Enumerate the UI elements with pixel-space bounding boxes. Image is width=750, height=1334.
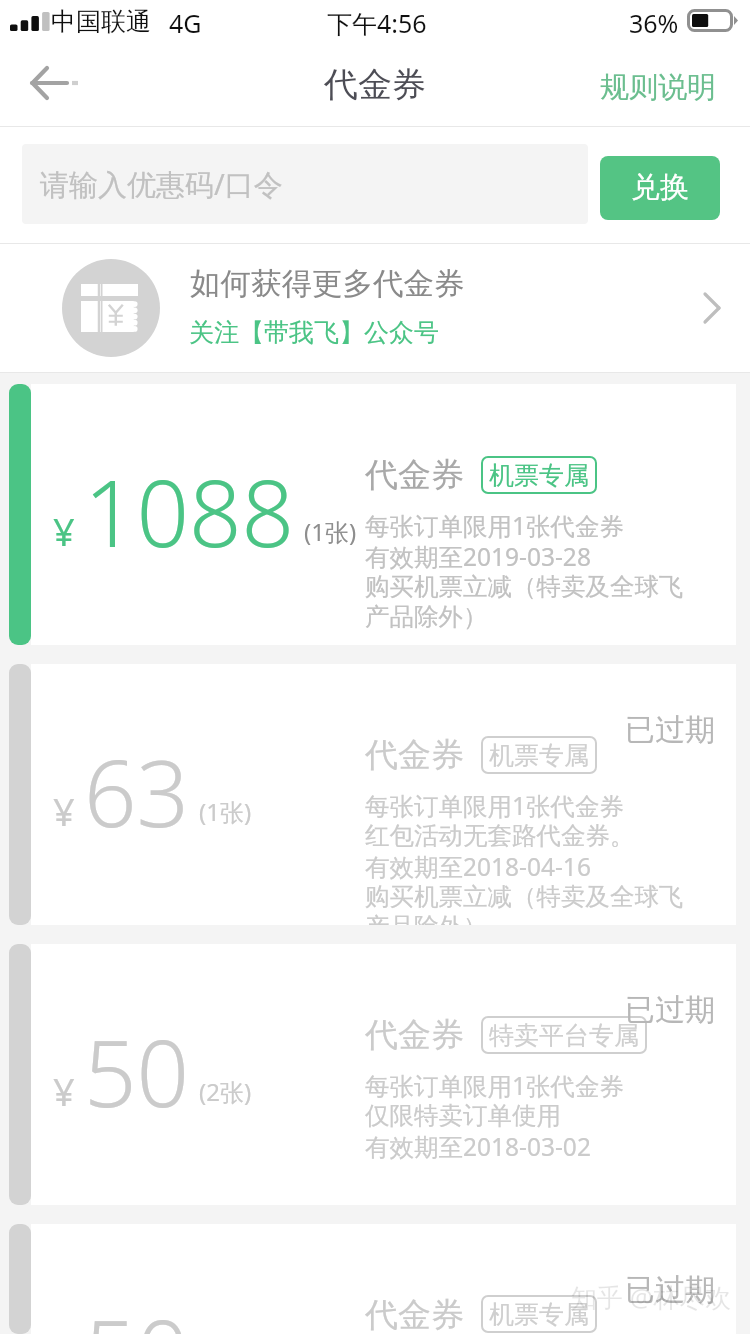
- staticText: 机票专属: [489, 1299, 589, 1330]
- button[interactable]: ¥: [9, 1224, 736, 1334]
- staticText: 4G: [169, 6, 202, 40]
- staticText: 机票专属: [489, 740, 589, 771]
- staticText: 代金券: [324, 63, 426, 106]
- staticText: 代金券: [365, 1294, 464, 1334]
- button[interactable]: 如何获得更多代金券: [0, 244, 750, 372]
- staticText: 如何获得更多代金券: [190, 265, 465, 303]
- staticText: 已过期: [625, 991, 715, 1029]
- staticText: 请输入优惠码/口令: [40, 164, 283, 204]
- staticText: 1088: [84, 449, 295, 574]
- staticText: (1张): [304, 515, 357, 548]
- staticText: ¥: [53, 505, 75, 557]
- staticText: 规则说明: [600, 69, 716, 106]
- staticText: ¥: [53, 1065, 75, 1117]
- staticText: (2张): [199, 1075, 252, 1108]
- staticText: 特卖平台专属: [489, 1020, 639, 1051]
- staticText: 兑换: [631, 169, 689, 206]
- staticText: ¥: [53, 785, 75, 837]
- staticText: 每张订单限用1张代金券 有效期至2019-03-28 购买机票立减（特卖及全球飞…: [365, 511, 684, 633]
- staticText: 机票专属: [489, 460, 589, 491]
- staticText: 50: [84, 1289, 190, 1334]
- staticText: 每张订单限用1张代金券 仅限特卖订单使用 有效期至2018-03-02: [365, 1071, 625, 1163]
- staticText: 代金券: [365, 454, 464, 496]
- staticText: 代金券: [365, 1014, 464, 1056]
- staticText: 已过期: [625, 1271, 715, 1309]
- button[interactable]: ¥: [9, 664, 736, 925]
- staticText: 50: [84, 1009, 190, 1134]
- button[interactable]: 兑换: [600, 156, 720, 220]
- button[interactable]: Back: [0, 54, 92, 126]
- button[interactable]: 规则说明: [588, 54, 728, 126]
- staticText: 36%: [629, 6, 679, 40]
- staticText: 63: [84, 729, 190, 854]
- staticText: 下午4:56: [327, 6, 427, 40]
- staticText: 已过期: [625, 711, 715, 749]
- staticText: 每张订单限用1张代金券 红包活动无套路代金券。 有效期至2018-04-16 购…: [365, 791, 684, 925]
- staticText: (1张): [199, 795, 252, 828]
- staticText: 中国联通: [51, 6, 151, 37]
- button[interactable]: 请输入优惠码/口令: [22, 144, 588, 224]
- staticText: 代金券: [365, 734, 464, 776]
- staticText: 关注【带我飞】公众号: [189, 317, 439, 348]
- staticText: 知乎 @林尽欢: [571, 1279, 732, 1315]
- button[interactable]: ¥: [9, 384, 736, 645]
- button[interactable]: ¥: [9, 944, 736, 1205]
